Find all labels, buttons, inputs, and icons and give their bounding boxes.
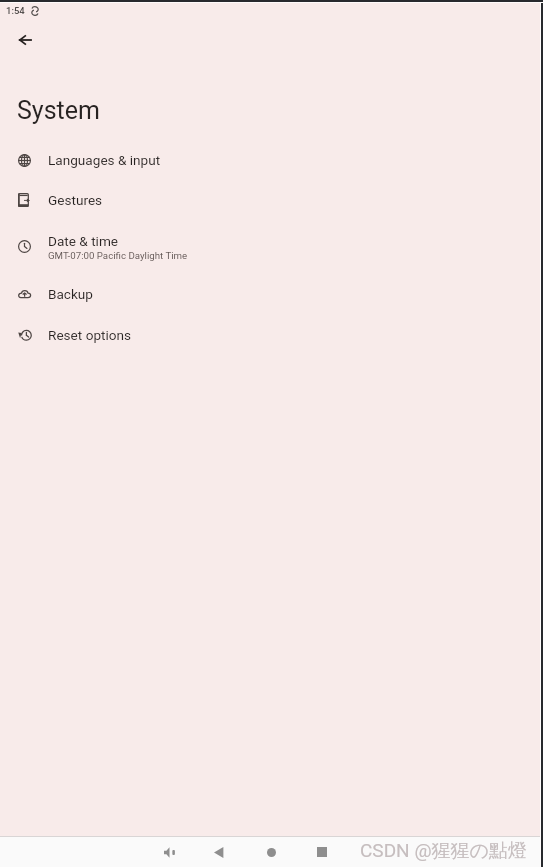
staticText: Date & time [48, 233, 119, 249]
button[interactable]: Back [9, 24, 41, 56]
staticText: 1:54 [6, 5, 25, 16]
staticText: Reset options [48, 327, 132, 343]
button[interactable]: Home [258, 839, 284, 865]
staticText: GMT-07:00 Pacific Daylight Time [48, 250, 188, 261]
button[interactable]: Gestures [0, 180, 543, 220]
button[interactable]: Volume [156, 839, 182, 865]
button[interactable]: Reset options [0, 315, 543, 355]
button[interactable]: Date & time [0, 220, 543, 273]
button[interactable]: Back [206, 839, 232, 865]
staticText: Languages & input [48, 152, 161, 168]
staticText: Backup [48, 286, 93, 302]
staticText: System [17, 96, 100, 125]
staticText: CSDN @猩猩の點燈 [360, 839, 527, 863]
staticText: Gestures [48, 192, 103, 208]
button[interactable]: Languages & input [0, 140, 543, 180]
button[interactable]: Backup [0, 274, 543, 314]
button[interactable]: Recents [309, 839, 335, 865]
